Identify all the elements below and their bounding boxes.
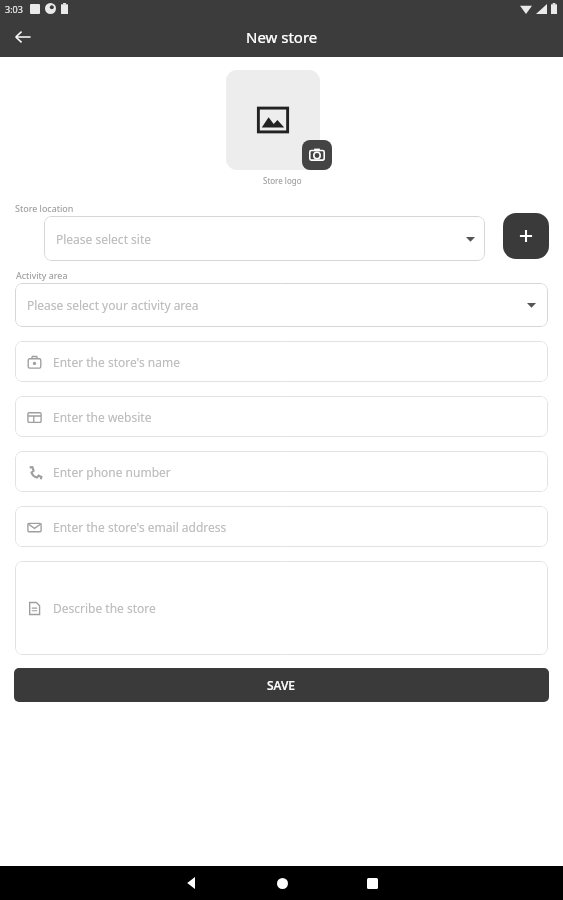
staticText: Describe the store [53,600,156,616]
button[interactable]: Add location [503,213,549,259]
staticText: Activity area [16,269,68,281]
button[interactable]: SAVE [14,668,549,702]
button[interactable]: Enter the store's name [15,341,548,382]
staticText: Enter the store's name [53,354,180,370]
button[interactable]: Please select your activity area [15,283,548,327]
button[interactable]: Please select site [44,216,485,261]
staticText: Store logo [263,175,302,186]
button[interactable]: Enter the store's email address [15,506,548,547]
button[interactable]: Describe the store [15,561,548,655]
staticText: SAVE [267,677,296,693]
button[interactable]: Back [177,868,207,898]
staticText: Enter phone number [53,464,171,480]
button[interactable]: Enter the website [15,396,548,437]
button[interactable]: Take photo [302,140,332,170]
staticText: 3:03 [5,3,23,15]
staticText: Please select your activity area [27,297,199,313]
button[interactable]: Home [267,868,297,898]
staticText: Store location [15,202,74,214]
button[interactable]: Recent apps [357,868,387,898]
staticText: Enter the store's email address [53,519,227,535]
staticText: New store [246,27,318,47]
staticText: Please select site [56,231,152,247]
button[interactable]: Enter phone number [15,451,548,492]
staticText: Enter the website [53,409,152,425]
button[interactable]: Store logo [226,70,320,170]
button[interactable]: Back [6,20,40,54]
